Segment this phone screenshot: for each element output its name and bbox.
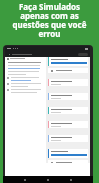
staticText: Faça Simulados apenas com as questões qu… bbox=[4, 1, 95, 40]
button[interactable] bbox=[48, 79, 88, 86]
button[interactable] bbox=[48, 107, 88, 114]
button[interactable] bbox=[48, 160, 88, 165]
button[interactable] bbox=[48, 149, 88, 158]
button[interactable] bbox=[48, 68, 88, 73]
button[interactable] bbox=[48, 93, 88, 100]
button[interactable] bbox=[48, 135, 88, 142]
button[interactable] bbox=[48, 121, 88, 128]
button[interactable] bbox=[48, 57, 88, 66]
